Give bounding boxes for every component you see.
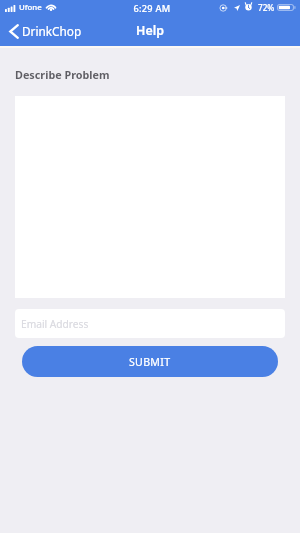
button[interactable]: Email Address: [15, 309, 285, 338]
button[interactable]: Back to DrinkChop: [6, 20, 88, 42]
staticText: Email Address: [21, 317, 89, 331]
staticText: Ufone: [19, 2, 42, 13]
staticText: Help: [0, 22, 300, 39]
staticText: 6:29 AM: [2, 2, 300, 15]
staticText: Describe Problem: [15, 67, 110, 82]
staticText: SUBMIT: [129, 355, 171, 369]
staticText: 72%: [258, 2, 275, 13]
button[interactable]: SUBMIT: [22, 346, 278, 377]
staticText: DrinkChop: [22, 23, 82, 39]
